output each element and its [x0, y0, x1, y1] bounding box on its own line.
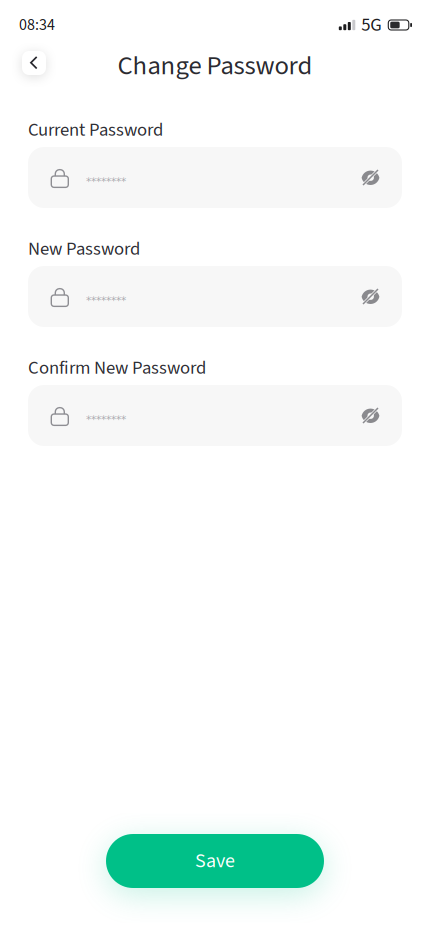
staticText: ********	[86, 413, 126, 426]
staticText: Change Password	[117, 47, 312, 85]
staticText: Confirm New Password	[28, 355, 206, 381]
staticText: Current Password	[28, 117, 163, 143]
button[interactable]: Back	[22, 51, 46, 75]
button[interactable]: Save	[106, 834, 324, 888]
staticText: ********	[86, 294, 126, 307]
button[interactable]: Show Current Password	[361, 168, 402, 187]
staticText: New Password	[28, 236, 140, 262]
staticText: ********	[86, 175, 126, 188]
staticText: 08:34	[19, 14, 55, 36]
button[interactable]: Show New Password	[361, 287, 402, 306]
staticText: 5G	[361, 12, 382, 38]
staticText: Save	[195, 847, 235, 875]
button[interactable]: Show Confirm New Password	[361, 406, 402, 425]
